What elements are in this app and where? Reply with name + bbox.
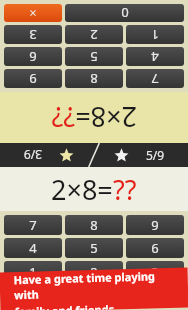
button[interactable]: Digit 4 xyxy=(126,47,184,66)
staticText: 1 xyxy=(29,263,37,281)
button[interactable]: Close xyxy=(4,4,62,22)
button[interactable]: 5/9 xyxy=(97,143,182,167)
staticText: 7 xyxy=(29,216,37,234)
staticText: ?? xyxy=(51,99,75,136)
button[interactable]: Close xyxy=(4,285,62,306)
button[interactable]: Digit 1 xyxy=(126,25,184,44)
button[interactable]: Digit 3 xyxy=(126,261,184,282)
staticText: 4 xyxy=(151,48,159,66)
staticText: 5 xyxy=(90,239,98,257)
staticText: 0 xyxy=(121,4,129,22)
staticText: 6 xyxy=(151,239,159,257)
staticText: 8 xyxy=(90,70,98,88)
staticText: 9 xyxy=(151,216,159,234)
staticText: 8 xyxy=(90,216,98,234)
button[interactable]: Digit 5 xyxy=(65,238,123,258)
button[interactable]: Digit 9 xyxy=(126,215,184,235)
button[interactable]: Digit 6 xyxy=(4,47,62,66)
button[interactable]: Digit 9 xyxy=(4,69,62,88)
button[interactable]: Digit 2 xyxy=(65,25,123,44)
button[interactable]: Digit 2 xyxy=(65,261,123,282)
staticText: 4 xyxy=(29,239,37,257)
staticText: 2×8= xyxy=(75,99,137,136)
staticText: Have a great time playing with xyxy=(13,268,180,302)
button[interactable]: Digit 5 xyxy=(65,47,123,66)
button[interactable]: Digit 4 xyxy=(4,238,62,258)
staticText: 6 xyxy=(29,48,37,66)
staticText: 2 xyxy=(90,263,98,281)
button[interactable]: Digit 7 xyxy=(4,215,62,235)
staticText: 1 xyxy=(151,26,159,44)
staticText: 2×8= xyxy=(51,171,113,208)
staticText: 9 xyxy=(29,70,37,88)
button[interactable]: Digit 0 xyxy=(65,4,184,22)
staticText: family and friends. xyxy=(14,301,118,310)
button[interactable]: Have a great time playing with xyxy=(0,267,188,310)
button[interactable]: Digit 3 xyxy=(4,25,62,44)
button[interactable]: Digit 6 xyxy=(126,238,184,258)
staticText: 5 xyxy=(90,48,98,66)
button[interactable]: Digit 8 xyxy=(65,215,123,235)
staticText: 3/9 xyxy=(23,147,42,163)
staticText: 2 xyxy=(90,26,98,44)
button[interactable]: Digit 0 xyxy=(65,285,184,306)
button[interactable]: Digit 8 xyxy=(65,69,123,88)
staticText: 5/9 xyxy=(146,147,165,163)
staticText: 3 xyxy=(151,263,159,281)
staticText: 3 xyxy=(29,26,37,44)
button[interactable]: 3/9 xyxy=(6,143,91,167)
button[interactable]: Digit 7 xyxy=(126,69,184,88)
button[interactable]: Digit 1 xyxy=(4,261,62,282)
staticText: ?? xyxy=(113,171,137,208)
staticText: 7 xyxy=(151,70,159,88)
